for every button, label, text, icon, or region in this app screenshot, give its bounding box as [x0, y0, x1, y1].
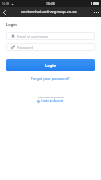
button[interactable]: Back	[0, 8, 8, 16]
staticText: Don't have an account?	[38, 95, 64, 98]
staticText: Password	[17, 45, 33, 50]
button[interactable]: Email or username	[6, 32, 95, 40]
button[interactable]: Create an Account	[0, 98, 101, 103]
button[interactable]: Forgot your password?	[0, 75, 101, 81]
staticText: Forgot your password?	[31, 76, 70, 81]
button[interactable]: Password	[6, 43, 95, 51]
staticText: 16:08	[2, 2, 10, 6]
button[interactable]: Login	[6, 59, 95, 71]
staticText: Email or username	[17, 34, 49, 39]
staticText: vectorchat.activegroup.co.za	[21, 9, 77, 15]
staticText: 16:08	[46, 1, 55, 6]
staticText: Login	[6, 22, 17, 27]
staticText: Create an Account	[41, 99, 64, 103]
staticText: Login	[45, 63, 57, 68]
button[interactable]: More options	[92, 8, 100, 16]
